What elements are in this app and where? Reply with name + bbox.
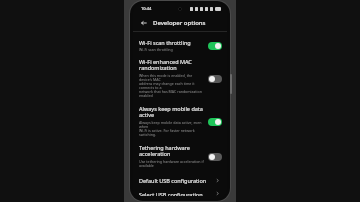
button[interactable]: Toggle on bbox=[208, 118, 222, 126]
button[interactable]: Open bbox=[212, 191, 222, 196]
button[interactable]: Wi-Fi enhanced MAC randomization bbox=[133, 55, 227, 102]
button[interactable]: Tethering hardware acceleration bbox=[133, 141, 227, 172]
staticText: When this mode is enabled, the device's … bbox=[139, 73, 204, 99]
staticText: Always keep mobile data active, even whe… bbox=[139, 120, 204, 138]
button[interactable]: Toggle on bbox=[208, 42, 222, 50]
button[interactable]: Select USB configuration bbox=[133, 188, 227, 199]
button[interactable]: Toggle off bbox=[208, 75, 222, 83]
button[interactable]: Wi-Fi scan throttling bbox=[133, 36, 227, 55]
staticText: 10:44 bbox=[141, 6, 152, 11]
staticText: Always keep mobile data active bbox=[139, 105, 204, 119]
staticText: Developer options bbox=[153, 19, 206, 27]
staticText: Wi-Fi scan throttling bbox=[139, 39, 191, 46]
staticText: Tethering hardware acceleration bbox=[139, 144, 204, 158]
button[interactable]: Always keep mobile data active bbox=[133, 102, 227, 141]
button[interactable]: Back bbox=[139, 18, 149, 28]
button[interactable]: Open bbox=[212, 175, 222, 185]
button[interactable]: Default USB configuration bbox=[133, 172, 227, 188]
staticText: Select USB configuration bbox=[139, 191, 203, 196]
staticText: Use tethering hardware acceleration if a… bbox=[139, 159, 204, 169]
staticText: Default USB configuration bbox=[139, 177, 207, 184]
button[interactable]: Toggle off bbox=[208, 153, 222, 161]
staticText: Wi-Fi scan throttling bbox=[139, 47, 173, 52]
staticText: Wi-Fi enhanced MAC randomization bbox=[139, 58, 192, 72]
